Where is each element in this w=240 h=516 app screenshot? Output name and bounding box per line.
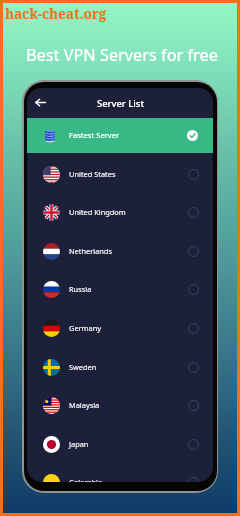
button[interactable]: United States	[27, 155, 213, 194]
staticText: hack-cheat.org	[5, 5, 107, 23]
button[interactable]: Malaysia	[27, 386, 213, 425]
staticText: Russia	[69, 284, 92, 294]
button[interactable]: Netherlands	[27, 232, 213, 271]
staticText: Sweden	[69, 362, 97, 372]
staticText: Colombia	[69, 477, 103, 482]
button[interactable]: Colombia	[27, 463, 213, 482]
staticText: United States	[69, 169, 116, 179]
button[interactable]: Russia	[27, 270, 213, 309]
button[interactable]: Sweden	[27, 348, 213, 387]
staticText: Japan	[69, 439, 89, 449]
staticText: Server List	[97, 97, 144, 110]
button[interactable]: United Kingdom	[27, 193, 213, 232]
button[interactable]: Back	[27, 88, 53, 118]
staticText: United Kingdom	[69, 207, 126, 217]
staticText: Best VPN Servers for free	[26, 44, 218, 66]
staticText: Malaysia	[69, 400, 100, 410]
button[interactable]: Germany	[27, 309, 213, 348]
staticText: Fastest Server	[69, 130, 120, 140]
staticText: Netherlands	[69, 246, 112, 256]
button[interactable]: Japan	[27, 425, 213, 464]
staticText: Germany	[69, 323, 101, 333]
button[interactable]: Fastest Server	[27, 118, 213, 153]
